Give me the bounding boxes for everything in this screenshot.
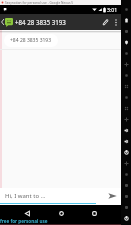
button[interactable]: Power [121, 147, 131, 158]
button[interactable]: Snapshots [121, 103, 131, 114]
staticText: 3:01 [107, 6, 118, 13]
staticText: +84 28 3835 3193 [15, 18, 66, 26]
button[interactable]: Home [54, 206, 68, 220]
button[interactable]: Navigate up [0, 14, 5, 30]
button[interactable]: Home [121, 191, 131, 202]
button[interactable]: More options [111, 14, 120, 30]
staticText: Sexynotion for personal use - Google Nex… [5, 1, 74, 5]
button[interactable]: Camera [121, 92, 131, 103]
button[interactable]: Virtual sensors [121, 81, 131, 92]
button[interactable]: Phone [121, 48, 131, 59]
button[interactable]: Cellular [121, 4, 131, 15]
button[interactable]: Volume up [121, 125, 131, 136]
button[interactable]: Send [104, 188, 121, 203]
button[interactable]: Location [121, 37, 131, 48]
staticText: Hi, I want to ... [5, 192, 46, 200]
button[interactable]: Rotate [121, 158, 131, 169]
button[interactable]: Fingerprint [121, 70, 131, 81]
button[interactable]: Settings [121, 213, 131, 224]
button[interactable]: Volume down [121, 136, 131, 147]
button[interactable]: Hi, I want to ... [0, 188, 121, 203]
button[interactable]: Back [20, 206, 34, 220]
button[interactable]: Recents [87, 206, 101, 220]
button[interactable]: Attach [99, 14, 111, 30]
button[interactable]: Battery [121, 15, 131, 26]
button[interactable]: Share [121, 114, 131, 125]
staticText: free for personal use [0, 218, 48, 224]
button[interactable]: Overview [121, 202, 131, 213]
button[interactable]: Zoom [121, 169, 131, 180]
button[interactable]: Network [121, 26, 131, 37]
staticText: +84 28 3835 3193 [10, 37, 52, 44]
button[interactable]: Back [121, 180, 131, 191]
button[interactable]: Directional pad [121, 59, 131, 70]
